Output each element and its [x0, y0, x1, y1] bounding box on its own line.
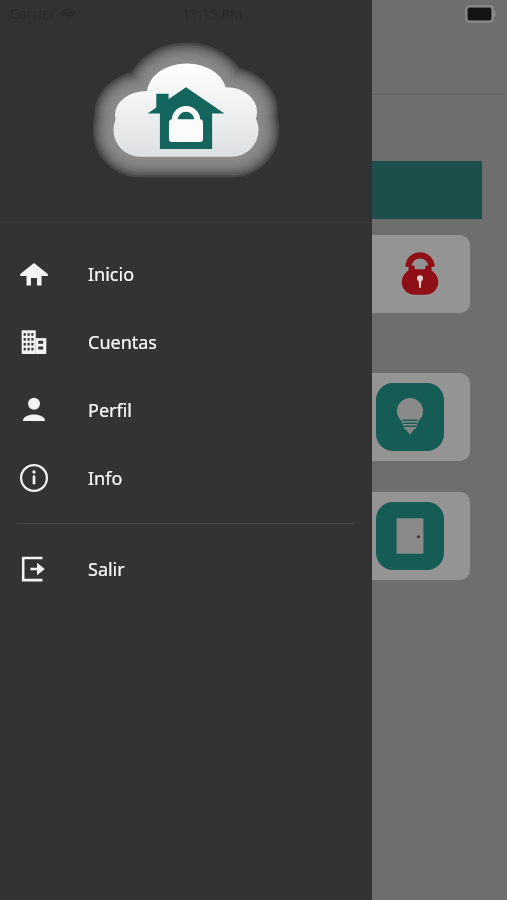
button[interactable]: Salir — [0, 535, 372, 603]
other: Battery — [466, 6, 496, 22]
button[interactable] — [290, 373, 470, 461]
button[interactable] — [290, 492, 470, 580]
staticText: Salir — [88, 557, 125, 582]
button[interactable]: Inicio — [0, 240, 372, 308]
button[interactable]: Info — [0, 444, 372, 512]
staticText: Inicio — [88, 262, 135, 287]
staticText: Perfil — [88, 398, 132, 423]
staticText: Cuentas — [88, 330, 157, 355]
button[interactable]: Perfil — [0, 376, 372, 444]
button[interactable]: Cuentas — [0, 308, 372, 376]
button[interactable] — [290, 235, 470, 313]
staticText: Info — [88, 466, 123, 491]
